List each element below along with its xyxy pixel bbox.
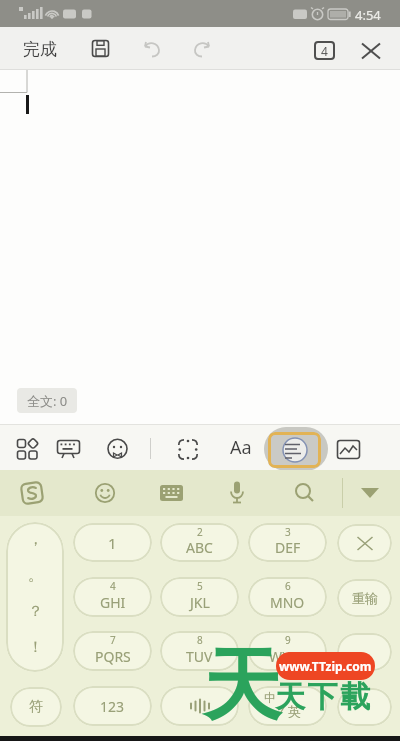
staticText: 符 bbox=[29, 698, 43, 716]
staticText: 6 bbox=[285, 579, 291, 593]
button[interactable] bbox=[337, 440, 360, 459]
button[interactable] bbox=[337, 633, 392, 671]
button[interactable] bbox=[337, 524, 392, 562]
staticText: ， bbox=[28, 530, 43, 549]
staticText: 2 bbox=[197, 525, 203, 539]
button[interactable] bbox=[268, 432, 321, 468]
staticText: 全文: 0 bbox=[27, 392, 68, 410]
staticText: 完成 bbox=[23, 39, 57, 60]
staticText: ABC bbox=[186, 538, 213, 557]
button[interactable]: 5 bbox=[160, 577, 239, 617]
button[interactable] bbox=[160, 686, 239, 726]
button[interactable] bbox=[95, 483, 115, 503]
staticText: 123 bbox=[100, 697, 125, 716]
button[interactable] bbox=[358, 485, 382, 501]
button[interactable] bbox=[295, 483, 315, 503]
staticText: GHI bbox=[100, 593, 126, 612]
button[interactable] bbox=[229, 481, 245, 505]
staticText: 天下載 bbox=[275, 678, 373, 716]
staticText: 4 bbox=[110, 579, 116, 593]
button[interactable]: Aa bbox=[224, 432, 258, 462]
button[interactable]: 8 bbox=[160, 631, 239, 671]
button[interactable] bbox=[160, 485, 183, 501]
staticText: 4:54 bbox=[355, 6, 381, 24]
button[interactable]: 3 bbox=[248, 523, 327, 562]
button[interactable]: 4 bbox=[314, 41, 335, 60]
button[interactable] bbox=[178, 439, 198, 460]
button[interactable]: 2 bbox=[160, 523, 239, 562]
staticText: 7 bbox=[110, 633, 116, 647]
button[interactable] bbox=[92, 40, 109, 57]
staticText: 1 bbox=[108, 533, 117, 553]
button[interactable]: 4 bbox=[73, 577, 152, 617]
staticText: JKL bbox=[190, 593, 210, 612]
button[interactable]: 9 bbox=[248, 631, 327, 671]
button[interactable]: 123 bbox=[73, 686, 152, 726]
staticText: MNO bbox=[270, 593, 305, 612]
button[interactable]: 6 bbox=[248, 577, 327, 617]
staticText: 重输 bbox=[352, 590, 378, 606]
button[interactable]: 1 bbox=[73, 523, 152, 562]
staticText: 英 bbox=[288, 703, 301, 719]
button[interactable]: 完成 bbox=[10, 35, 70, 63]
button[interactable] bbox=[57, 440, 80, 459]
staticText: 5 bbox=[197, 579, 203, 593]
staticText: 。 bbox=[28, 566, 43, 585]
button[interactable]: ， bbox=[6, 522, 64, 672]
button[interactable]: 7 bbox=[73, 631, 152, 671]
staticText: PQRS bbox=[95, 647, 131, 666]
button[interactable] bbox=[107, 439, 128, 460]
button[interactable]: 符 bbox=[10, 687, 62, 727]
staticText: DEF bbox=[275, 538, 301, 557]
staticText: 天 bbox=[203, 637, 281, 735]
staticText: 3 bbox=[285, 525, 291, 539]
staticText: WXYZ bbox=[269, 647, 307, 666]
staticText: TUV bbox=[186, 647, 213, 666]
staticText: Aa bbox=[230, 435, 252, 460]
staticText: ？ bbox=[28, 602, 43, 621]
staticText: 中 bbox=[264, 690, 276, 705]
button[interactable] bbox=[192, 42, 212, 57]
staticText: ！ bbox=[28, 638, 43, 657]
staticText: 4 bbox=[321, 43, 328, 59]
button[interactable] bbox=[142, 42, 162, 57]
button[interactable]: 中 bbox=[248, 686, 327, 726]
button[interactable] bbox=[361, 43, 381, 59]
button[interactable] bbox=[17, 439, 38, 460]
button[interactable] bbox=[337, 688, 392, 726]
button[interactable] bbox=[20, 481, 44, 505]
staticText: 9 bbox=[285, 633, 291, 647]
button[interactable]: 重输 bbox=[337, 579, 392, 617]
staticText: 8 bbox=[197, 633, 203, 647]
staticText: www.TTzip.com bbox=[279, 658, 372, 674]
